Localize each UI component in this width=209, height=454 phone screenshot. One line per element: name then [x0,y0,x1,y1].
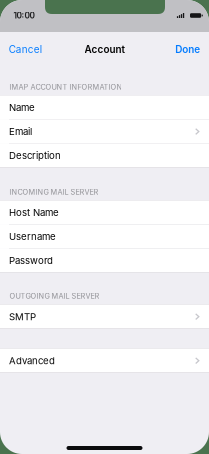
staticText: Host Name [9,207,59,218]
staticText: Password [9,255,53,266]
button[interactable]: Email [0,119,209,143]
staticText: Email [9,126,32,137]
staticText: INCOMING MAIL SERVER [9,188,98,196]
staticText: Done [175,43,200,55]
button[interactable]: Username [0,225,209,249]
staticText: 10:00 [13,10,34,20]
button[interactable]: Password [0,249,209,273]
staticText: OUTGOING MAIL SERVER [9,292,99,301]
button[interactable]: SMTP [0,305,209,329]
button[interactable]: Done [175,43,200,55]
button[interactable]: Cancel [9,43,42,55]
button[interactable]: Host Name [0,201,209,225]
button[interactable]: Advanced [0,349,209,373]
staticText: Description [9,150,61,161]
button[interactable]: Name [0,95,209,119]
staticText: Name [9,102,35,113]
staticText: Account [84,43,124,55]
staticText: IMAP ACCOUNT INFORMATION [9,83,122,91]
staticText: SMTP [9,311,36,322]
staticText: Advanced [9,355,55,366]
staticText: Cancel [9,43,42,55]
staticText: Username [9,231,56,242]
button[interactable]: Description [0,144,209,168]
